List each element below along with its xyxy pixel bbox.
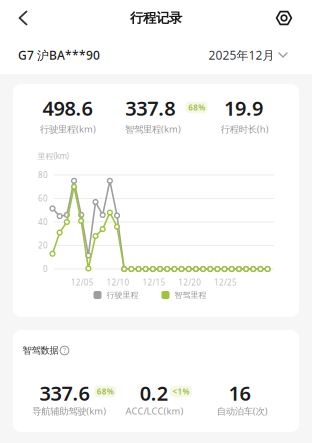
staticText: 0: [43, 264, 48, 274]
staticText: 12/15: [142, 277, 165, 288]
staticText: 行驶里程: [106, 290, 138, 300]
staticText: 导航辅助驾驶(km): [32, 405, 106, 417]
staticText: 68%: [97, 386, 114, 397]
button[interactable]: 返回: [0, 0, 28, 36]
staticText: 12/05: [71, 277, 94, 288]
button[interactable]: 2025年12月: [208, 47, 287, 63]
staticText: 0.2: [140, 380, 168, 406]
staticText: 智驾数据: [22, 345, 58, 356]
button[interactable]: 设置: [275, 0, 312, 36]
staticText: 80: [38, 170, 48, 180]
staticText: <1%: [172, 386, 189, 397]
staticText: 60: [38, 193, 48, 204]
staticText: G7 沪BA***90: [18, 47, 100, 63]
staticText: 行程记录: [130, 10, 182, 26]
staticText: 行驶里程(km): [40, 123, 96, 135]
staticText: 20: [38, 240, 48, 251]
staticText: 337.8: [125, 95, 175, 121]
staticText: 16: [228, 380, 250, 406]
staticText: 19.9: [224, 95, 263, 121]
staticText: 自动泊车(次): [217, 405, 268, 417]
staticText: 智驾里程: [174, 290, 206, 300]
staticText: ?: [63, 346, 66, 355]
button[interactable]: 智驾数据说明: [60, 346, 69, 355]
staticText: 337.6: [39, 380, 89, 406]
staticText: 智驾里程(km): [125, 123, 181, 135]
staticText: 行程时长(h): [221, 123, 269, 135]
staticText: 498.6: [42, 95, 92, 121]
staticText: ACC/LCC(km): [125, 405, 183, 417]
staticText: 2025年12月: [208, 47, 274, 63]
staticText: 12/25: [214, 277, 237, 288]
staticText: 里程(km): [37, 151, 68, 161]
staticText: 68%: [188, 102, 205, 113]
staticText: 12/10: [106, 277, 129, 288]
staticText: 12/20: [178, 277, 201, 288]
staticText: 40: [38, 217, 48, 227]
